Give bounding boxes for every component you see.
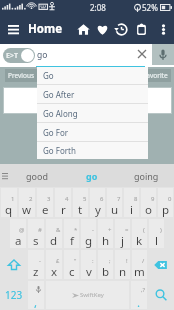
staticText: !	[126, 257, 128, 265]
button[interactable]: Go Along	[37, 104, 148, 122]
button[interactable]: (	[132, 219, 147, 248]
button[interactable]: "	[64, 250, 79, 279]
staticText: ,?	[141, 286, 146, 294]
staticText: z	[33, 264, 39, 280]
staticText: SwiftKey	[80, 291, 104, 299]
staticText: -	[39, 257, 41, 265]
button[interactable]: 1	[1, 188, 17, 217]
button[interactable]: E>T	[3, 48, 35, 63]
button[interactable]: Previous	[5, 69, 37, 82]
button[interactable]: £	[46, 250, 62, 279]
button[interactable]: 6	[90, 188, 105, 217]
button[interactable]: 3	[37, 188, 53, 217]
button[interactable]: ,	[28, 281, 44, 309]
staticText: 2	[29, 195, 33, 203]
button[interactable]: Space	[46, 281, 129, 309]
button[interactable]: #	[28, 219, 44, 248]
button[interactable]: 4	[55, 188, 71, 217]
staticText: -	[92, 226, 94, 234]
button[interactable]: go	[64, 164, 119, 187]
button[interactable]: Menu	[0, 14, 26, 44]
button[interactable]: )	[149, 219, 164, 248]
button[interactable]: +	[98, 219, 113, 248]
button[interactable]: 9	[141, 188, 156, 217]
button[interactable]: !	[115, 250, 130, 279]
staticText: *	[74, 226, 78, 234]
staticText: #	[38, 226, 42, 234]
staticText: =	[125, 226, 129, 234]
button[interactable]: Go For	[37, 123, 148, 141]
staticText: t	[78, 202, 83, 218]
button[interactable]: Go After	[37, 85, 148, 103]
staticText: Go For	[43, 127, 69, 138]
staticText: ;	[109, 257, 111, 265]
staticText: Favorite	[143, 71, 168, 80]
button[interactable]: Search	[148, 280, 174, 310]
button[interactable]: 5	[73, 188, 88, 217]
button[interactable]: 7	[107, 188, 122, 217]
button[interactable]: good	[9, 164, 64, 187]
staticText: .	[137, 295, 141, 310]
staticText: o	[145, 202, 152, 218]
button[interactable]: =	[115, 219, 130, 248]
button[interactable]: ;	[98, 250, 113, 279]
staticText: :	[92, 257, 94, 265]
staticText: v	[86, 264, 92, 280]
button[interactable]: Home	[73, 14, 93, 44]
staticText: p	[162, 202, 170, 218]
staticText: 2:08	[90, 2, 106, 13]
staticText: s	[33, 233, 39, 249]
staticText: c	[69, 264, 75, 280]
button[interactable]: 123	[0, 280, 27, 310]
staticText: x	[51, 264, 58, 280]
staticText: j	[121, 233, 124, 249]
staticText: r	[61, 202, 66, 218]
button[interactable]: Backspace	[148, 249, 174, 280]
button[interactable]: Clipboard	[131, 14, 152, 44]
button[interactable]: Favorites	[93, 14, 112, 44]
button[interactable]: Voice input	[152, 44, 174, 65]
button[interactable]: Go Forth	[37, 142, 148, 159]
button[interactable]: -	[28, 250, 44, 279]
button[interactable]: Shift	[0, 249, 27, 280]
staticText: k	[136, 233, 143, 249]
button[interactable]: going	[119, 164, 174, 187]
staticText: m	[134, 264, 145, 280]
staticText: 9	[151, 195, 155, 203]
button[interactable]: *	[64, 219, 79, 248]
staticText: d	[50, 233, 58, 249]
button[interactable]: Clear	[132, 42, 152, 65]
staticText: 6	[100, 195, 104, 203]
staticText: going	[134, 170, 159, 182]
staticText: u	[111, 202, 119, 218]
button[interactable]: 8	[124, 188, 139, 217]
staticText: Go Along	[43, 108, 78, 119]
staticText: 4	[65, 195, 69, 203]
staticText: @	[19, 226, 25, 234]
button[interactable]: /	[132, 250, 147, 279]
staticText: Go	[43, 70, 54, 81]
staticText: w	[22, 202, 32, 218]
staticText: Home	[28, 21, 63, 37]
button[interactable]: &	[46, 219, 62, 248]
button[interactable]: -	[81, 219, 96, 248]
button[interactable]: History	[112, 14, 131, 44]
staticText: 52%	[142, 2, 158, 13]
staticText: 0	[168, 195, 172, 203]
button[interactable]: Go	[37, 67, 148, 84]
staticText: £	[56, 257, 60, 265]
button[interactable]: Menu	[0, 164, 9, 187]
button[interactable]: More options	[152, 14, 174, 44]
button[interactable]: Favorite	[139, 69, 171, 82]
button[interactable]: ,?	[131, 281, 147, 309]
button[interactable]: 2	[19, 188, 35, 217]
button[interactable]: 0	[158, 188, 173, 217]
button[interactable]: :	[81, 250, 96, 279]
staticText: 123	[5, 288, 23, 302]
staticText: 1	[11, 195, 15, 203]
button[interactable]: @	[10, 219, 26, 248]
staticText: go	[86, 170, 98, 182]
staticText: (	[143, 226, 145, 234]
staticText: y	[95, 202, 101, 218]
staticText: i	[130, 202, 133, 218]
